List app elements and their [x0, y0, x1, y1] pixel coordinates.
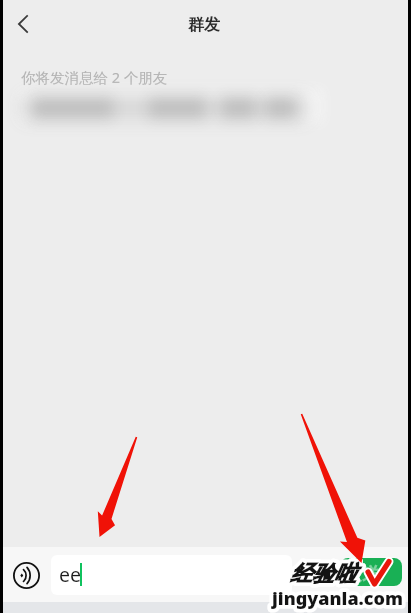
staticText: jingyanla.com	[272, 586, 403, 611]
staticText: jingyanla.com	[272, 586, 403, 611]
button[interactable]: ee	[51, 555, 292, 595]
staticText: ee	[59, 561, 81, 588]
staticText: 群发	[188, 15, 220, 35]
button[interactable]: Voice input	[5, 554, 47, 596]
staticText: 文送	[344, 563, 380, 586]
staticText: 经验啦	[290, 560, 356, 588]
staticText: 经验啦	[290, 560, 356, 588]
staticText: 你将发消息给 2 个朋友	[21, 67, 168, 87]
button[interactable]: Back	[0, 1, 46, 47]
